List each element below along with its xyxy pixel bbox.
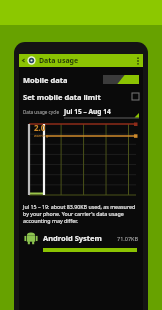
staticText: 2.0 (34, 122, 46, 133)
staticText: Mobile data (23, 75, 68, 85)
button[interactable]: Mobile data (23, 71, 139, 88)
staticText: Jul 15 – 19: about 83.90KB used, as meas… (23, 203, 139, 224)
staticText: Data usage (39, 56, 79, 66)
staticText: Data usage cycle (23, 109, 60, 115)
staticText: 71.07KB (117, 235, 139, 242)
staticText: Android System (43, 233, 102, 243)
button[interactable]: Set mobile data limit (23, 88, 139, 105)
button[interactable]: Android System (23, 230, 139, 252)
staticText: Jul 15 – Aug 14 (64, 107, 111, 116)
button[interactable]: Jul 15 – Aug 14 (64, 106, 139, 119)
staticText: warning (34, 133, 48, 138)
other: Back (21, 58, 26, 63)
staticText: Set mobile data limit (23, 92, 101, 102)
button[interactable]: Back (19, 54, 143, 67)
button[interactable]: More options (132, 54, 143, 67)
